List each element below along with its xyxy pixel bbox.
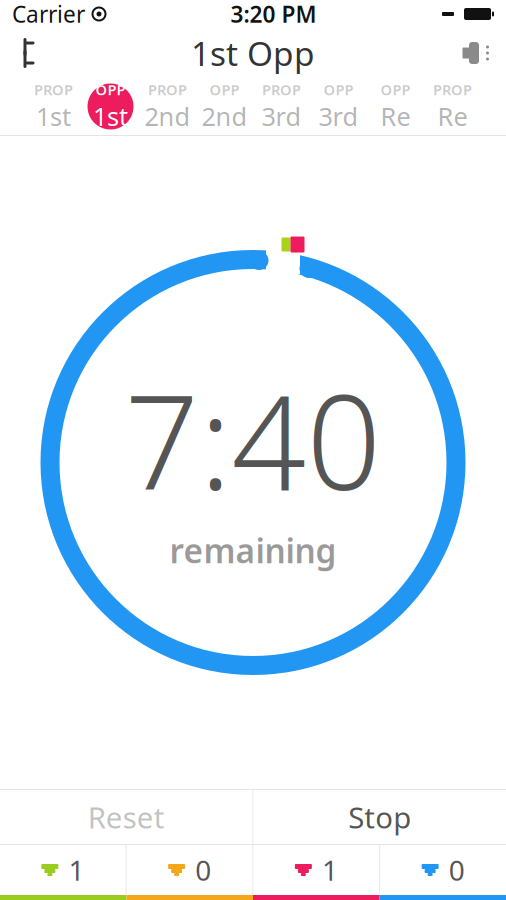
button[interactable]: Proposition first points of information — [0, 845, 126, 895]
button[interactable]: Stop — [253, 790, 506, 844]
staticText: 1 — [322, 851, 338, 889]
staticText: OPP — [380, 80, 410, 99]
staticText: 0 — [449, 851, 465, 889]
button[interactable]: OPP — [196, 78, 253, 135]
staticText: 1 — [68, 851, 84, 889]
button[interactable]: PROP — [139, 78, 196, 135]
staticText: PROP — [34, 80, 73, 99]
button[interactable]: PROP — [253, 78, 310, 135]
button[interactable]: OPP — [82, 78, 139, 135]
staticText: 1st — [36, 99, 71, 133]
staticText: 1st — [93, 99, 128, 133]
button[interactable]: OPP — [367, 78, 424, 135]
staticText: PROP — [262, 80, 301, 99]
staticText: 3rd — [261, 99, 301, 133]
button[interactable]: PROP — [424, 78, 481, 135]
staticText: PROP — [433, 80, 472, 99]
button[interactable]: Opposition points of information — [127, 845, 253, 895]
staticText: PROP — [148, 80, 187, 99]
staticText: 3rd — [318, 99, 358, 133]
staticText: Re — [380, 99, 410, 133]
staticText: remaining — [169, 528, 336, 572]
staticText: Reset — [88, 797, 165, 836]
button[interactable]: Reset — [0, 790, 252, 844]
staticText: OPP — [95, 80, 125, 99]
staticText: 3:20 PM — [230, 0, 316, 29]
staticText: 1st Opp — [191, 31, 315, 75]
staticText: OPP — [323, 80, 353, 99]
staticText: 2nd — [201, 99, 247, 133]
button[interactable]: PROP — [25, 78, 82, 135]
staticText: 7:40 — [124, 353, 381, 526]
staticText: OPP — [209, 80, 239, 99]
button[interactable]: Back — [0, 28, 58, 78]
button[interactable]: OPP — [310, 78, 367, 135]
staticText: Stop — [348, 797, 411, 836]
button[interactable]: Opposition replies — [253, 845, 379, 895]
staticText: 0 — [195, 851, 211, 889]
staticText: 2nd — [144, 99, 190, 133]
staticText: Re — [437, 99, 467, 133]
button[interactable]: Proposition replies — [380, 845, 506, 895]
button[interactable]: Sound settings — [448, 28, 506, 78]
staticText: Carrier — [12, 0, 85, 29]
